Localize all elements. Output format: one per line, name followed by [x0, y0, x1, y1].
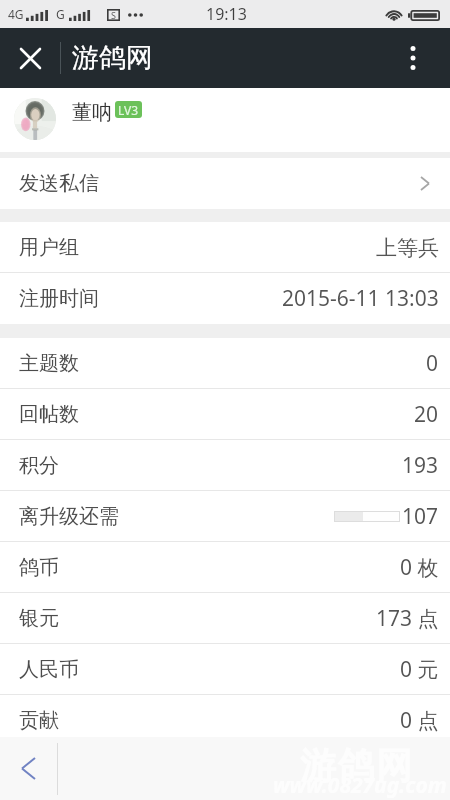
staticText: 20	[414, 400, 439, 429]
staticText: 4G	[8, 6, 24, 22]
staticText: 鸽币	[19, 555, 59, 580]
staticText: 回帖数	[19, 402, 79, 427]
button[interactable]: 离升级还需	[0, 491, 450, 542]
button[interactable]: Close	[0, 28, 60, 88]
button[interactable]: 董呐	[0, 88, 450, 152]
staticText: 游鸽网	[72, 41, 153, 75]
staticText: 注册时间	[19, 286, 99, 311]
staticText: 发送私信	[19, 171, 99, 196]
staticText: 2015-6-11 13:03	[282, 284, 439, 313]
button[interactable]: 回帖数	[0, 389, 450, 440]
staticText: 主题数	[19, 351, 79, 376]
button[interactable]: Back	[0, 737, 57, 800]
staticText: 贡献	[19, 708, 59, 733]
button[interactable]: 人民币	[0, 644, 450, 695]
button[interactable]: 发送私信	[0, 158, 450, 209]
staticText: 董呐	[72, 100, 112, 125]
staticText: 0 元	[400, 655, 439, 684]
button[interactable]: More options	[390, 28, 450, 88]
staticText: 银元	[19, 606, 59, 631]
staticText: 人民币	[19, 657, 79, 682]
staticText: 积分	[19, 453, 59, 478]
button[interactable]: 鸽币	[0, 542, 450, 593]
staticText: 0 枚	[400, 553, 439, 582]
staticText: 用户组	[19, 235, 79, 260]
staticText: 上等兵	[376, 235, 439, 261]
button[interactable]: 银元	[0, 593, 450, 644]
button[interactable]: 用户组	[0, 222, 450, 273]
staticText: 193	[402, 451, 439, 480]
staticText: G	[56, 6, 65, 22]
button[interactable]: 主题数	[0, 338, 450, 389]
staticText: 173 点	[376, 604, 439, 633]
button[interactable]: 积分	[0, 440, 450, 491]
staticText: 0	[426, 349, 439, 378]
staticText: LV3	[118, 102, 139, 118]
button[interactable]: 贡献	[0, 695, 450, 746]
staticText: S	[111, 9, 116, 21]
staticText: 离升级还需	[19, 504, 119, 529]
staticText: 19:13	[206, 3, 247, 25]
button[interactable]: 注册时间	[0, 273, 450, 324]
staticText: 107	[402, 502, 439, 531]
staticText: 0 点	[400, 706, 439, 735]
